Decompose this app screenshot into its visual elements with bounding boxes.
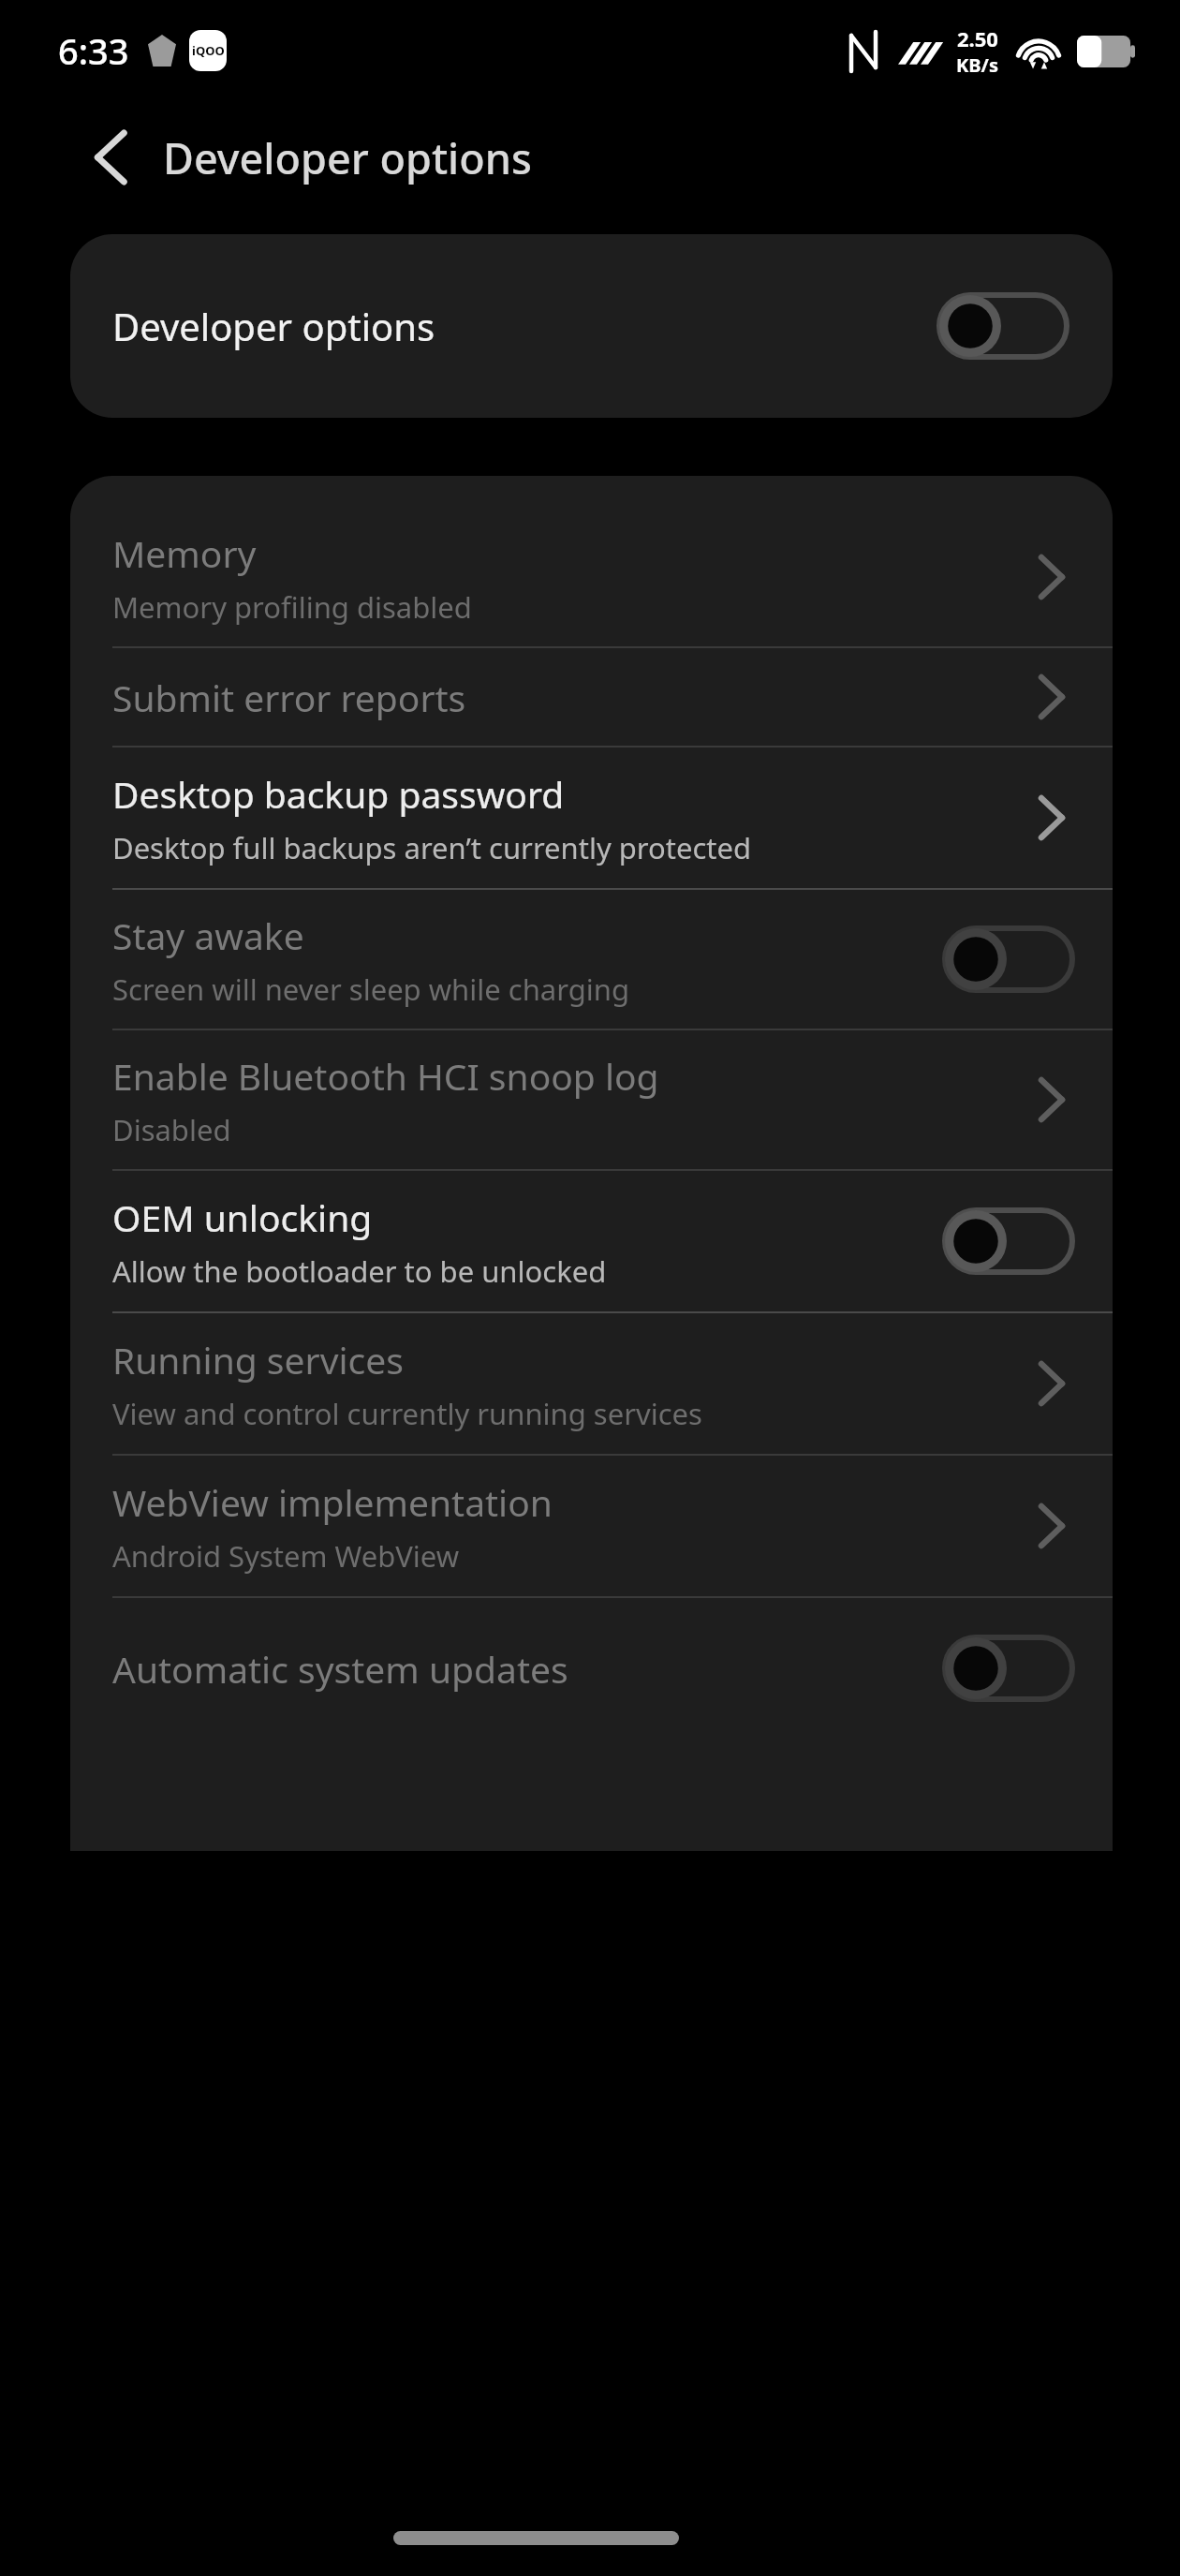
button[interactable]: OEM unlocking [70, 1171, 1113, 1311]
staticText: View and control currently running servi… [112, 1394, 702, 1433]
button[interactable]: Stay awake [70, 890, 1113, 1029]
button[interactable]: Toggle [938, 1629, 1079, 1708]
staticText: Memory [112, 528, 257, 578]
button[interactable]: Back [73, 120, 148, 195]
staticText: Screen will never sleep while charging [112, 970, 630, 1009]
button[interactable]: Toggle [938, 1202, 1079, 1281]
button[interactable]: Desktop backup password [70, 748, 1113, 888]
staticText: Android System WebView [112, 1536, 460, 1576]
other: Open [1025, 1351, 1079, 1416]
staticText: Desktop backup password [112, 769, 565, 819]
staticText: iQOO [192, 42, 225, 59]
button[interactable]: Running services [70, 1313, 1113, 1454]
button[interactable]: Memory [70, 508, 1113, 646]
staticText: Stay awake [112, 910, 304, 960]
staticText: Disabled [112, 1110, 231, 1149]
staticText: Automatic system updates [112, 1644, 568, 1694]
other: Open [1025, 785, 1079, 851]
other: Open [1025, 1493, 1079, 1559]
button[interactable]: Automatic system updates [70, 1598, 1113, 1739]
button[interactable]: Toggle [933, 287, 1073, 365]
staticText: 2.50 [957, 24, 998, 52]
other: Open [1025, 1067, 1079, 1133]
staticText: Memory profiling disabled [112, 587, 472, 627]
staticText: Desktop full backups aren’t currently pr… [112, 828, 752, 867]
staticText: OEM unlocking [112, 1192, 373, 1242]
staticText: 6:33 [58, 26, 129, 75]
button[interactable]: Submit error reports [70, 648, 1113, 746]
staticText: WebView implementation [112, 1477, 553, 1527]
staticText: KB/s [956, 52, 998, 78]
button[interactable]: Developer options [70, 234, 1113, 418]
button[interactable]: WebView implementation [70, 1456, 1113, 1596]
other: Open [1025, 664, 1079, 730]
other: Open [1025, 544, 1079, 610]
staticText: Enable Bluetooth HCI snoop log [112, 1051, 659, 1101]
button[interactable]: Enable Bluetooth HCI snoop log [70, 1030, 1113, 1169]
staticText: Allow the bootloader to be unlocked [112, 1251, 607, 1291]
staticText: Submit error reports [112, 673, 466, 722]
staticText: Running services [112, 1335, 404, 1384]
staticText: Developer options [112, 301, 435, 351]
button[interactable]: Toggle [938, 920, 1079, 999]
staticText: Developer options [163, 129, 532, 186]
